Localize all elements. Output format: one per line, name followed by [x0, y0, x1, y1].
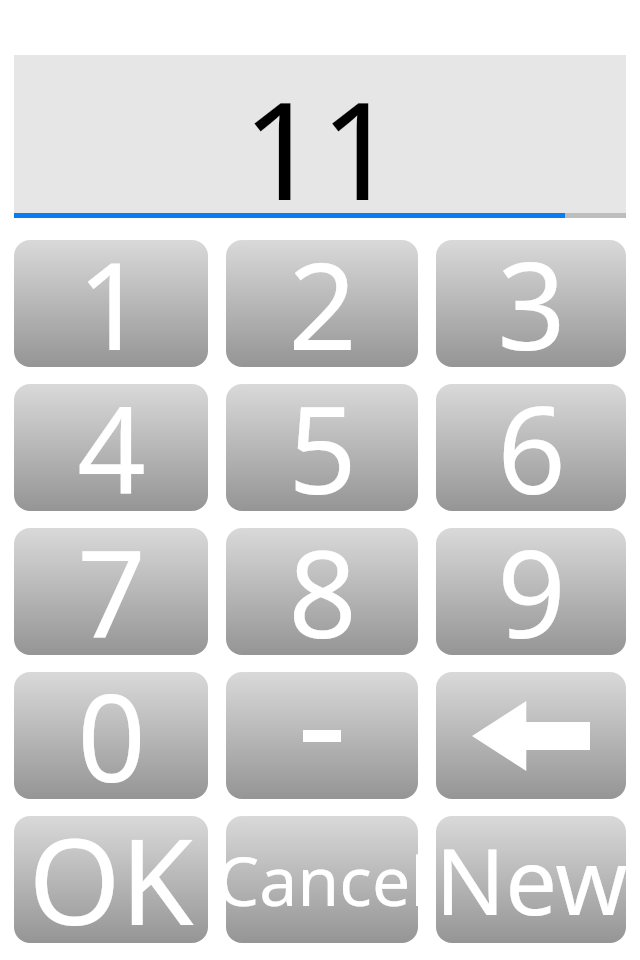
staticText: 2 [288, 240, 357, 367]
staticText: 9 [497, 528, 566, 655]
staticText: 6 [497, 384, 566, 511]
button[interactable]: 7 [14, 528, 208, 655]
button[interactable]: 4 [14, 384, 208, 511]
staticText: 5 [288, 384, 357, 511]
button[interactable]: Cancel [226, 816, 418, 943]
button[interactable]: 3 [436, 240, 626, 367]
button[interactable]: 2 [226, 240, 418, 367]
button[interactable]: 5 [226, 384, 418, 511]
button[interactable]: 1 [14, 240, 208, 367]
button[interactable]: OK [14, 816, 208, 943]
staticText: New [436, 817, 626, 942]
staticText: 3 [497, 240, 566, 367]
button[interactable]: 8 [226, 528, 418, 655]
button[interactable]: New [436, 816, 626, 943]
staticText: Cancel [226, 833, 418, 926]
staticText: 1 [77, 240, 146, 367]
button[interactable]: Minus [226, 672, 418, 799]
button[interactable]: 0 [14, 672, 208, 799]
staticText: 0 [77, 672, 146, 799]
staticText: 4 [77, 384, 146, 511]
staticText: OK [28, 816, 194, 943]
staticText: 8 [288, 528, 357, 655]
button[interactable]: Backspace [436, 672, 626, 799]
button[interactable]: 6 [436, 384, 626, 511]
staticText: 11 [242, 55, 398, 210]
staticText: 7 [77, 528, 146, 655]
button[interactable]: 9 [436, 528, 626, 655]
button[interactable]: 11 [14, 55, 626, 218]
